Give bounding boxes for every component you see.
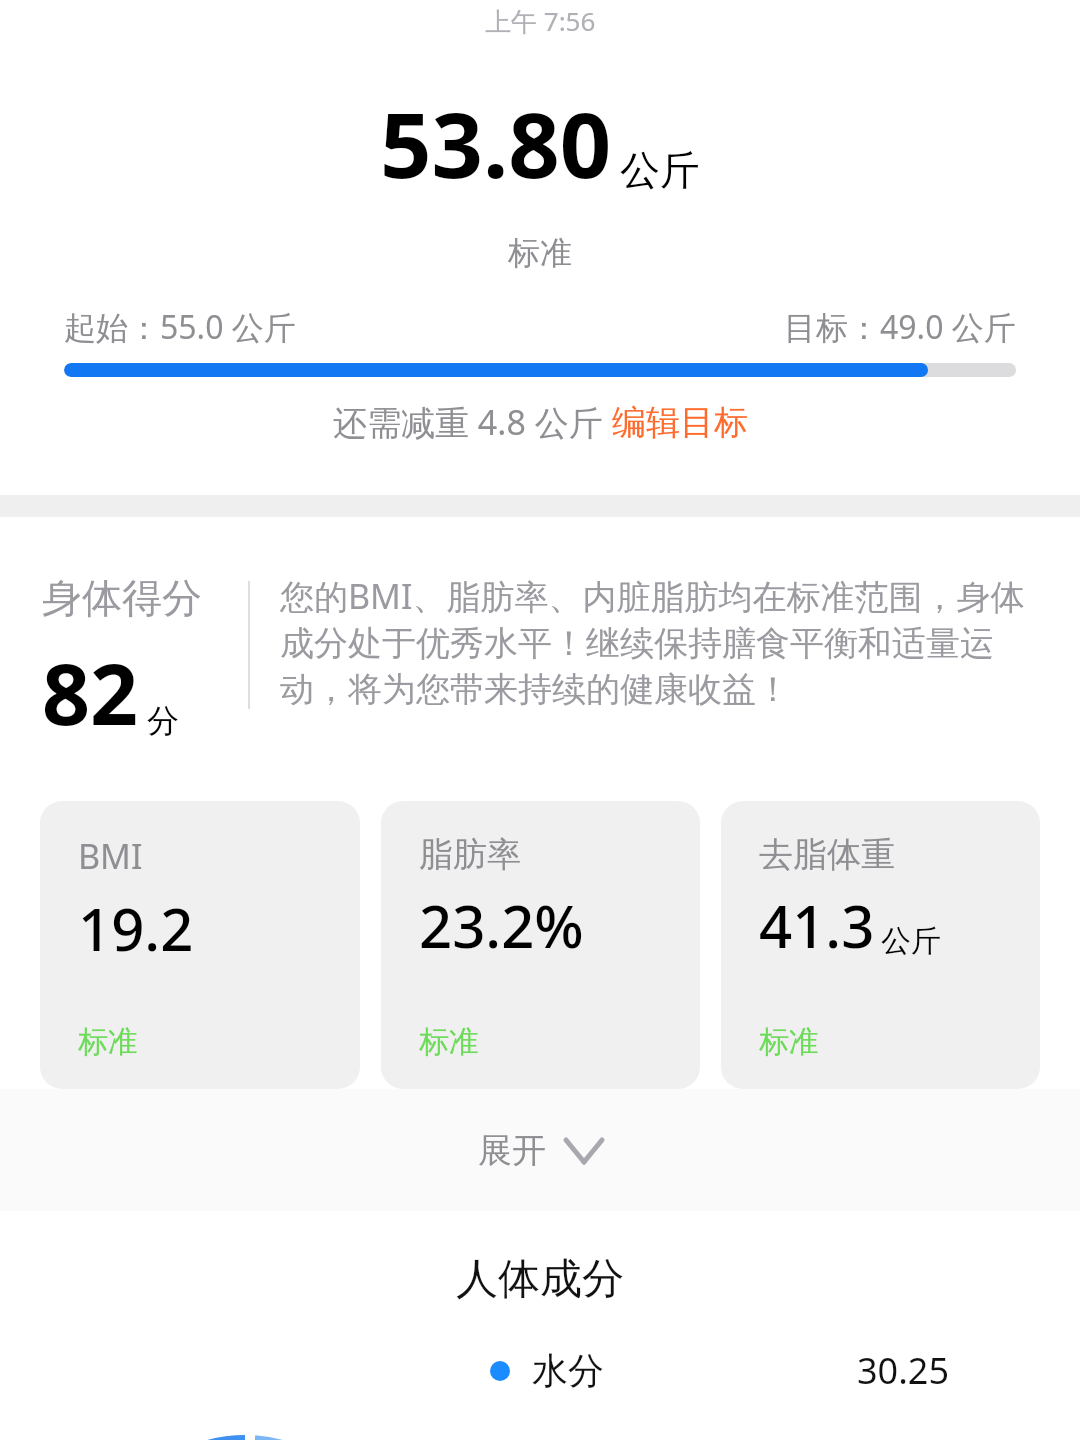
staticText: 还需减重 4.8 公斤 xyxy=(333,399,612,445)
staticText: 展开 xyxy=(478,1129,546,1172)
button[interactable]: 去脂体重 xyxy=(721,801,1040,1089)
staticText: 公斤 xyxy=(620,145,700,195)
staticText: 23.2% xyxy=(419,886,584,965)
staticText: 53.80 xyxy=(380,82,612,205)
staticText: 您的BMI、脂肪率、内脏脂肪均在标准范围，身体成分处于优秀水平！继续保持膳食平衡… xyxy=(280,573,1040,711)
staticText: 脂肪率 xyxy=(419,833,521,876)
staticText: 水分 xyxy=(532,1348,604,1393)
staticText: 公斤 xyxy=(881,922,941,960)
staticText: 标准 xyxy=(419,1023,479,1061)
button[interactable]: BMI xyxy=(40,801,360,1089)
staticText: 82 xyxy=(42,635,139,749)
button[interactable]: 展开 xyxy=(0,1089,1080,1211)
staticText: 编辑目标 xyxy=(612,401,748,444)
staticText: 身体得分 xyxy=(42,573,202,623)
button[interactable]: 水分 xyxy=(490,1346,950,1395)
staticText: 标准 xyxy=(759,1023,819,1061)
other: Expand xyxy=(566,1140,602,1162)
staticText: 标准 xyxy=(78,1023,138,1061)
staticText: 41.3 xyxy=(759,886,875,965)
staticText: 去脂体重 xyxy=(759,833,895,876)
staticText: 30.25 xyxy=(857,1346,950,1395)
staticText: 分 xyxy=(147,701,179,741)
staticText: 标准 xyxy=(508,233,572,273)
staticText: 上午 7:56 xyxy=(485,3,596,39)
staticText: 人体成分 xyxy=(456,1253,624,1306)
button[interactable]: 脂肪率 xyxy=(381,801,700,1089)
staticText: 起始：55.0 公斤 xyxy=(64,305,296,349)
staticText: 19.2 xyxy=(78,889,194,968)
staticText: BMI xyxy=(78,833,143,879)
staticText: 目标：49.0 公斤 xyxy=(784,305,1016,349)
button[interactable]: 编辑目标 xyxy=(612,401,748,444)
